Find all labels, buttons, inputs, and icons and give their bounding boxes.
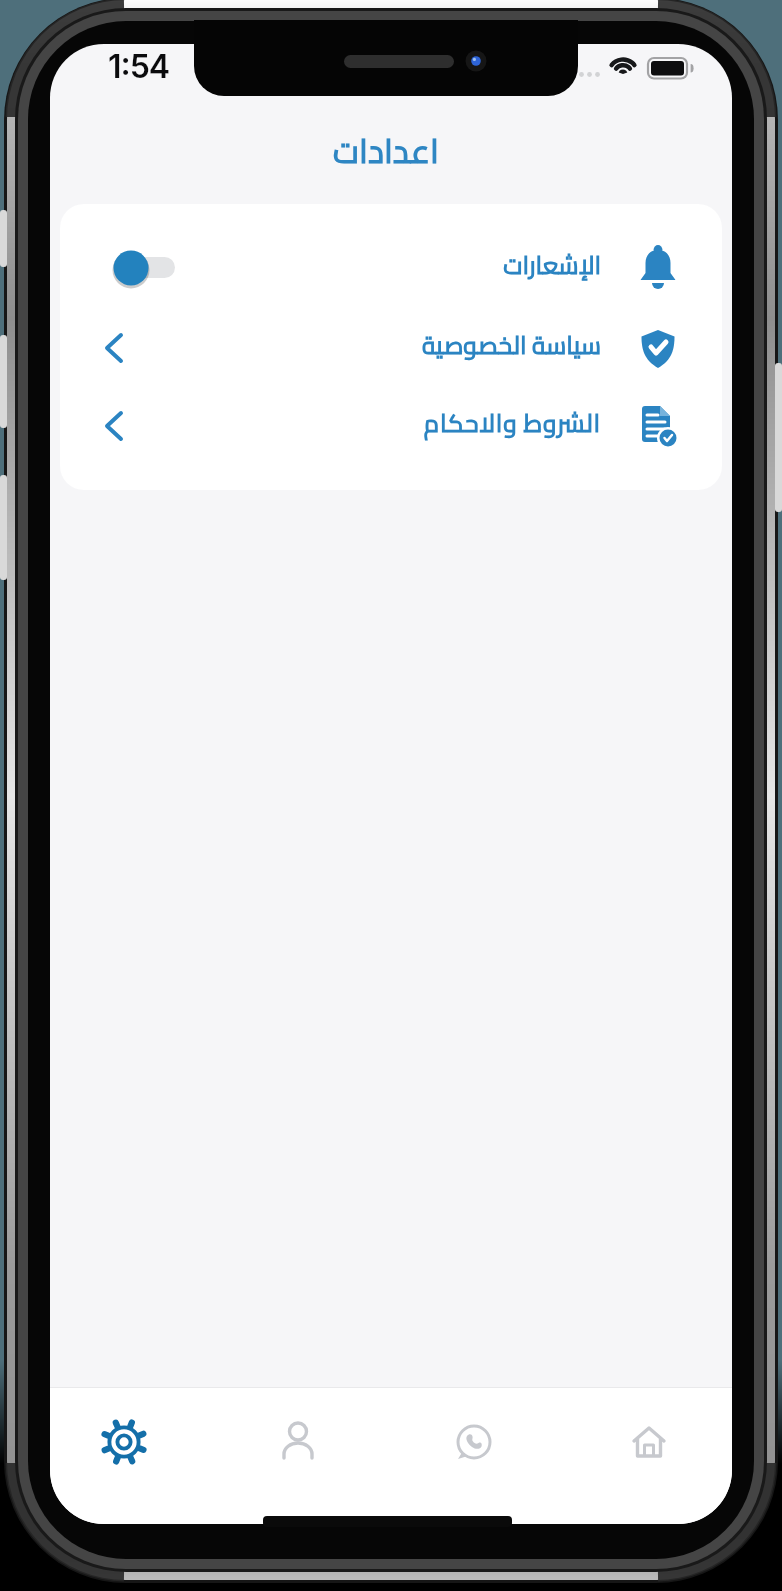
staticText: 1:54 <box>108 47 170 86</box>
button[interactable] <box>80 1400 168 1484</box>
staticText: الإشعارات <box>503 242 601 288</box>
button[interactable] <box>95 408 131 444</box>
button[interactable]: سياسة الخصوصية <box>60 308 722 388</box>
button[interactable] <box>605 1400 693 1484</box>
button[interactable] <box>105 243 180 293</box>
button[interactable]: الإشعارات <box>60 228 722 308</box>
staticText: الشروط والاحكام <box>423 400 601 446</box>
button[interactable]: الشروط والاحكام <box>60 386 722 466</box>
button[interactable] <box>95 330 131 366</box>
button[interactable] <box>430 1400 518 1484</box>
button[interactable] <box>254 1400 342 1484</box>
staticText: اعدادات <box>333 120 439 180</box>
staticText: سياسة الخصوصية <box>421 322 601 368</box>
